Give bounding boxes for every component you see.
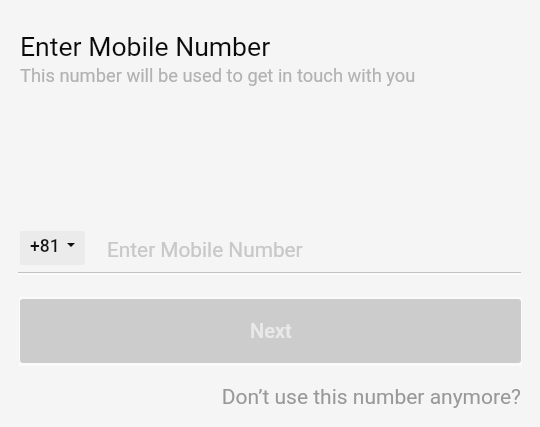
staticText: Don’t use this number anymore? bbox=[221, 385, 521, 409]
staticText: +81 bbox=[30, 236, 60, 257]
staticText: Enter Mobile Number bbox=[107, 238, 303, 262]
button[interactable]: Mobile number input field bbox=[95, 231, 521, 265]
button[interactable]: Select country calling code, currently +… bbox=[20, 231, 85, 265]
staticText: Enter Mobile Number bbox=[20, 31, 271, 62]
staticText: Next bbox=[250, 319, 292, 342]
button[interactable]: Don’t use this number anymore? bbox=[221, 385, 540, 409]
staticText: This number will be used to get in touch… bbox=[20, 65, 416, 86]
